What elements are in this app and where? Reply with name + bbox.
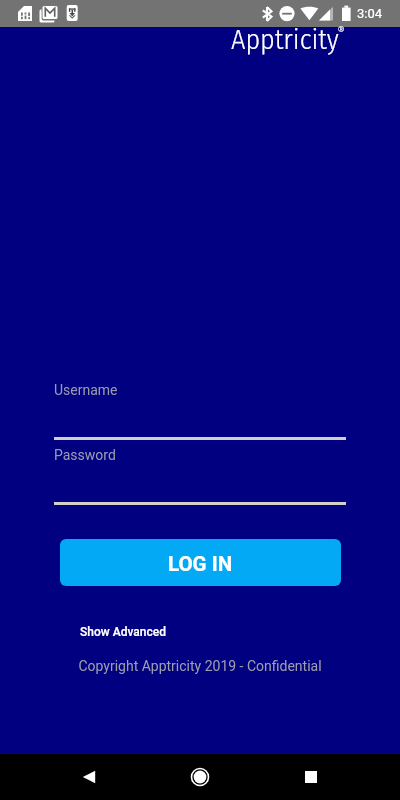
staticText: ® (338, 25, 345, 34)
button[interactable]: Password (54, 447, 346, 505)
staticText: Copyright Apptricity 2019 - Confidential (0, 658, 400, 674)
staticText: 3:04 (357, 6, 383, 21)
button[interactable]: LOG IN (60, 539, 341, 586)
staticText: Password (54, 447, 116, 463)
staticText: LOG IN (168, 552, 233, 576)
button[interactable]: Recent apps (281, 754, 341, 800)
staticText: Apptricity (231, 23, 339, 57)
staticText: Show Advanced (80, 625, 166, 639)
staticText: Username (54, 382, 118, 398)
button[interactable]: Home (170, 754, 230, 800)
button[interactable]: Username (54, 382, 346, 440)
button[interactable]: Back (59, 754, 119, 800)
button[interactable]: Show Advanced (72, 619, 174, 645)
